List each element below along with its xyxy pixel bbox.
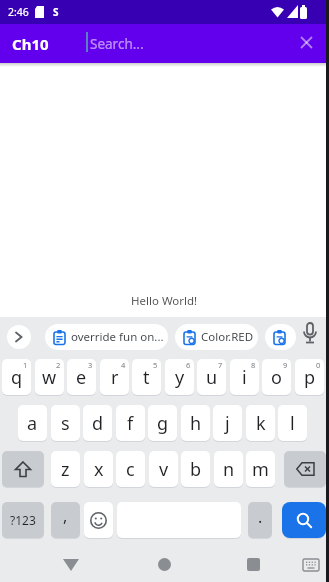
staticText: 8 (251, 360, 256, 370)
staticText: r (111, 365, 119, 390)
staticText: s (61, 411, 70, 436)
button[interactable]: j (213, 405, 242, 441)
staticText: 2:46 (8, 5, 29, 19)
button[interactable] (238, 552, 269, 577)
staticText: Color.RED (201, 329, 254, 345)
staticText: e (76, 365, 87, 390)
staticText: h (190, 411, 202, 436)
button[interactable]: h (181, 405, 210, 441)
staticText: x (94, 457, 104, 482)
button[interactable]: w (35, 359, 64, 395)
button[interactable] (2, 451, 44, 487)
staticText: j (225, 411, 230, 436)
button[interactable] (302, 323, 318, 345)
staticText: y (175, 365, 185, 390)
button[interactable]: d (83, 405, 112, 441)
staticText: q (11, 365, 23, 390)
staticText: ?123 (10, 512, 36, 528)
staticText: m (252, 457, 269, 482)
button[interactable]: i (230, 359, 259, 395)
staticText: 3 (88, 360, 93, 370)
button[interactable] (299, 552, 323, 577)
button[interactable]: k (246, 405, 275, 441)
button[interactable]: override fun on... (45, 324, 168, 350)
staticText: b (190, 457, 202, 482)
button[interactable]: g (148, 405, 177, 441)
button[interactable]: u (197, 359, 226, 395)
button[interactable]: z (51, 451, 80, 487)
staticText: override fun on... (71, 329, 164, 345)
staticText: n (223, 457, 235, 482)
button[interactable] (296, 32, 316, 52)
staticText: t (143, 365, 150, 390)
button[interactable] (284, 451, 326, 487)
button[interactable]: n (214, 451, 243, 487)
staticText: 7 (218, 360, 223, 370)
button[interactable] (55, 552, 86, 577)
button[interactable]: m (246, 451, 275, 487)
staticText: 0 (316, 360, 321, 370)
staticText: d (92, 411, 104, 436)
staticText: Search... (90, 35, 144, 53)
staticText: 4 (121, 360, 126, 370)
staticText: 1 (23, 360, 28, 370)
button[interactable]: l (278, 405, 307, 441)
button[interactable]: a (18, 405, 47, 441)
button[interactable]: s (51, 405, 80, 441)
button[interactable] (265, 324, 296, 350)
staticText: a (27, 411, 38, 436)
staticText: f (127, 411, 134, 436)
staticText: c (126, 457, 135, 482)
button[interactable]: x (84, 451, 113, 487)
staticText: 9 (283, 360, 288, 370)
staticText: v (159, 457, 169, 482)
staticText: 2 (56, 360, 61, 370)
button[interactable]: Search... (88, 24, 268, 63)
button[interactable]: b (181, 451, 210, 487)
staticText: i (242, 365, 247, 390)
staticText: Hello World! (131, 293, 198, 309)
button[interactable]: v (149, 451, 178, 487)
button[interactable]: ?123 (2, 502, 44, 538)
staticText: k (256, 411, 266, 436)
staticText: . (258, 506, 263, 528)
staticText: z (61, 457, 70, 482)
staticText: l (290, 411, 295, 436)
button[interactable]: p (295, 359, 324, 395)
staticText: g (157, 411, 169, 436)
button[interactable] (282, 502, 326, 538)
staticText: 5 (153, 360, 158, 370)
button[interactable]: , (51, 502, 80, 538)
button[interactable]: y (165, 359, 194, 395)
staticText: S (53, 5, 59, 19)
button[interactable]: q (2, 359, 31, 395)
staticText: u (206, 365, 218, 390)
button[interactable]: o (262, 359, 291, 395)
staticText: w (42, 365, 57, 390)
staticText: , (63, 505, 68, 527)
button[interactable]: e (67, 359, 96, 395)
staticText: Ch10 (12, 34, 49, 54)
button[interactable]: c (116, 451, 145, 487)
button[interactable] (7, 325, 31, 349)
staticText: o (271, 365, 282, 390)
staticText: p (304, 365, 316, 390)
button[interactable]: f (116, 405, 145, 441)
button[interactable]: r (100, 359, 129, 395)
button[interactable]: . (248, 502, 272, 538)
staticText: 6 (186, 360, 191, 370)
button[interactable]: t (132, 359, 161, 395)
button[interactable] (149, 552, 180, 577)
button[interactable] (84, 502, 113, 538)
button[interactable]: Color.RED (175, 324, 258, 350)
